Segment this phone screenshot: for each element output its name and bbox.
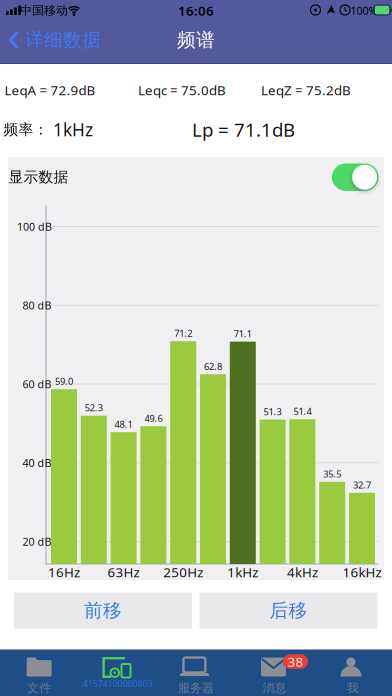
staticText: 1kHz	[227, 563, 258, 581]
staticText: 59.0	[55, 375, 73, 387]
staticText: 显示数据	[8, 168, 68, 186]
staticText: 51.3	[264, 405, 282, 418]
staticText: 16Hz	[48, 563, 80, 581]
button[interactable]: 详细数据	[9, 28, 101, 51]
staticText: 52.3	[85, 401, 103, 414]
staticText: 消息	[262, 681, 286, 695]
staticText: 40 dB	[22, 456, 51, 470]
staticText: 文件	[27, 681, 51, 695]
staticText: 62.8	[204, 360, 222, 372]
staticText: 35.5	[323, 468, 341, 480]
staticText: 100%	[350, 3, 377, 18]
staticText: 服务器	[178, 681, 214, 695]
staticText: 100 dB	[17, 219, 52, 234]
button[interactable]: 后移	[199, 592, 377, 628]
staticText: LeqA = 72.9dB	[4, 81, 95, 99]
staticText: 38	[287, 653, 303, 670]
button[interactable]: 消息	[235, 649, 314, 696]
button[interactable]: 显示数据	[332, 163, 378, 191]
staticText: 63Hz	[108, 563, 140, 581]
staticText: 频率：	[3, 120, 48, 138]
staticText: Leqc = 75.0dB	[138, 81, 226, 99]
staticText: 250Hz	[163, 563, 203, 581]
button[interactable]: 我	[314, 649, 392, 696]
staticText: 频谱	[177, 28, 215, 51]
staticText: 49.6	[144, 412, 162, 424]
staticText: 16:06	[178, 2, 214, 19]
button[interactable]: 文件	[0, 649, 78, 696]
button[interactable]: 前移	[14, 592, 192, 628]
staticText: 前移	[84, 599, 122, 622]
button[interactable]: 41574100000803	[78, 649, 157, 696]
staticText: 中国移动	[20, 3, 68, 18]
staticText: 1kHz	[53, 118, 93, 141]
staticText: 51.4	[293, 405, 311, 417]
staticText: 详细数据	[25, 28, 101, 51]
staticText: 71.1	[234, 327, 252, 340]
staticText: Lp = 71.1dB	[192, 117, 295, 142]
staticText: 32.7	[353, 479, 371, 491]
staticText: 后移	[269, 599, 307, 622]
staticText: LeqZ = 75.2dB	[261, 81, 351, 99]
staticText: 80 dB	[22, 298, 51, 312]
staticText: 48.1	[115, 418, 133, 430]
staticText: 41574100000803	[83, 677, 153, 690]
staticText: 16kHz	[342, 563, 381, 581]
staticText: 我	[347, 681, 359, 695]
staticText: 71.2	[174, 327, 192, 339]
button[interactable]: 服务器	[157, 649, 235, 696]
staticText: 20 dB	[22, 534, 51, 549]
staticText: 60 dB	[22, 377, 51, 391]
staticText: 4kHz	[287, 563, 318, 581]
